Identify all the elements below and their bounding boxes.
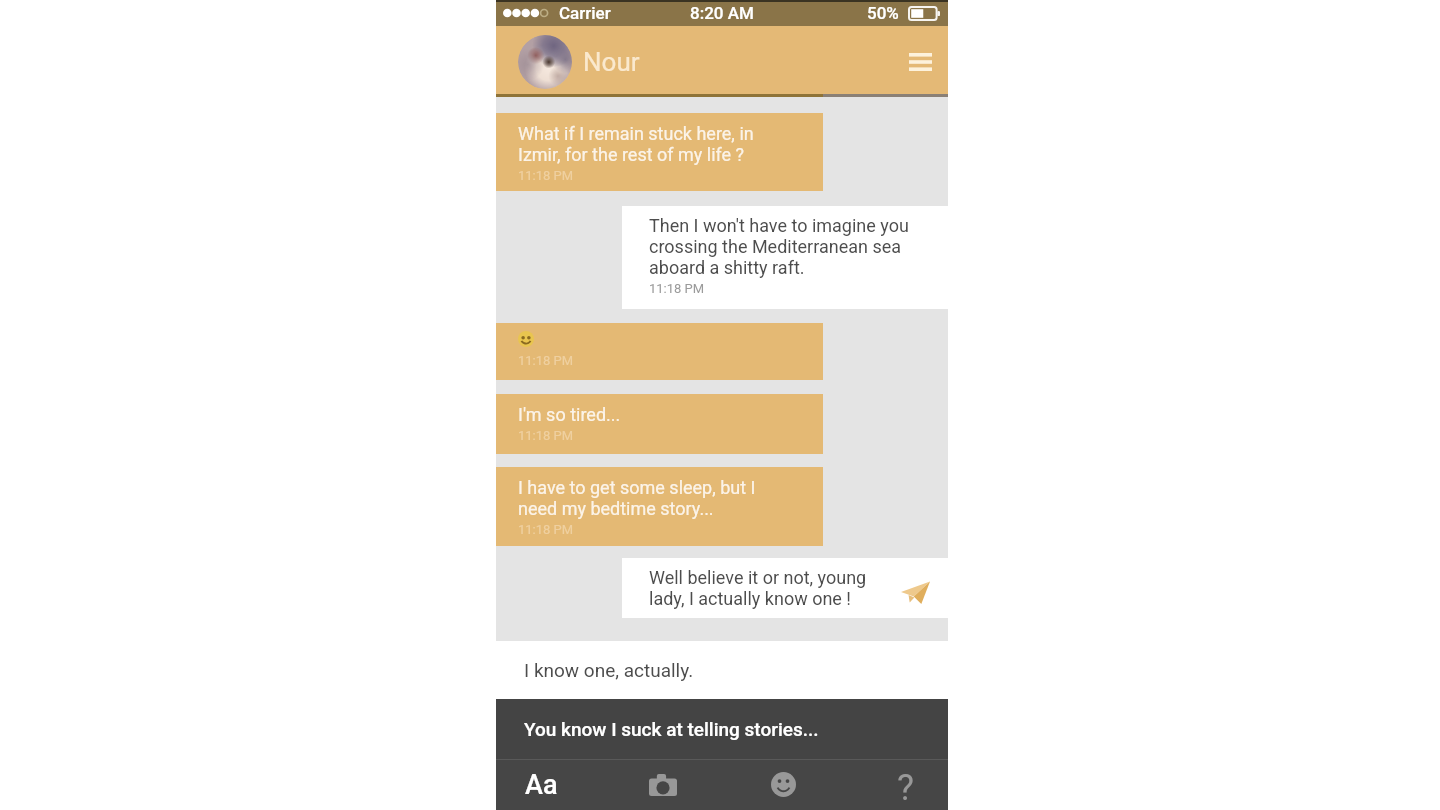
button[interactable]: Aa <box>511 762 571 807</box>
staticText: What if I remain stuck here, in Izmir, f… <box>518 123 754 165</box>
staticText: Well believe it or not, young lady, I ac… <box>649 567 867 609</box>
staticText: I'm so tired... <box>518 404 621 425</box>
staticText: 11:18 PM <box>649 281 705 296</box>
button[interactable]: Then I won't have to imagine you crossin… <box>622 206 948 309</box>
button[interactable]: I'm so tired... <box>496 394 823 454</box>
staticText: Aa <box>525 769 558 801</box>
button[interactable]: What if I remain stuck here, in Izmir, f… <box>496 113 823 191</box>
button[interactable]: I have to get some sleep, but I need my … <box>496 467 823 546</box>
staticText: ? <box>897 767 915 809</box>
button[interactable]: Camera <box>633 762 693 807</box>
button[interactable]: Profile photo <box>518 35 572 89</box>
button[interactable]: Well believe it or not, young lady, I ac… <box>622 558 948 618</box>
staticText: Nour <box>583 47 640 77</box>
button[interactable]: 11:18 PM <box>496 323 823 380</box>
staticText: Then I won't have to imagine you crossin… <box>649 215 909 278</box>
button[interactable]: Help <box>876 765 936 810</box>
button[interactable]: Menu <box>899 41 941 83</box>
button[interactable]: I know one, actually. <box>496 641 948 699</box>
button[interactable]: Emoji <box>753 762 813 807</box>
staticText: I know one, actually. <box>524 659 694 681</box>
staticText: 11:18 PM <box>518 353 574 368</box>
staticText: 11:18 PM <box>518 428 574 443</box>
staticText: 11:18 PM <box>518 168 574 183</box>
staticText: I have to get some sleep, but I need my … <box>518 477 756 519</box>
button[interactable]: You know I suck at telling stories... <box>496 699 948 759</box>
staticText: 11:18 PM <box>518 522 574 537</box>
staticText: 50% <box>867 3 899 23</box>
staticText: 8:20 AM <box>690 3 754 23</box>
staticText: Carrier <box>559 3 611 23</box>
staticText: You know I suck at telling stories... <box>524 718 819 740</box>
button[interactable]: Send <box>898 568 938 608</box>
